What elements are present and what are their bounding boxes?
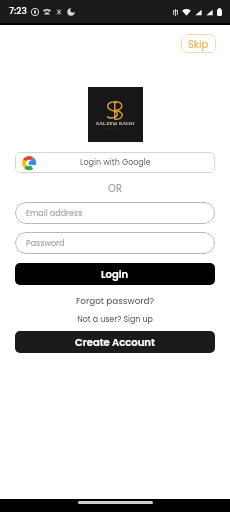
staticText: Login <box>101 267 129 281</box>
other: Google <box>22 156 36 170</box>
staticText: Password <box>26 238 65 249</box>
button[interactable]: Forgot password? <box>0 295 230 307</box>
button[interactable]: Skip <box>181 34 216 53</box>
staticText: Login with Google <box>80 157 151 168</box>
button[interactable]: Login <box>15 263 215 285</box>
staticText: OR <box>0 181 230 195</box>
staticText: Email address <box>26 208 83 219</box>
button[interactable]: Google <box>15 152 215 173</box>
staticText: SALEEM BAGH <box>96 120 135 127</box>
button[interactable]: Email address <box>15 202 215 224</box>
button[interactable]: Not a user? Sign up <box>0 314 230 325</box>
button[interactable]: Create Account <box>15 331 215 353</box>
staticText: Skip <box>188 37 209 51</box>
staticText: 7:23 <box>9 5 27 18</box>
staticText: Create Account <box>75 335 155 349</box>
button[interactable]: Password <box>15 232 215 254</box>
staticText: H O T E L S <box>105 127 126 131</box>
